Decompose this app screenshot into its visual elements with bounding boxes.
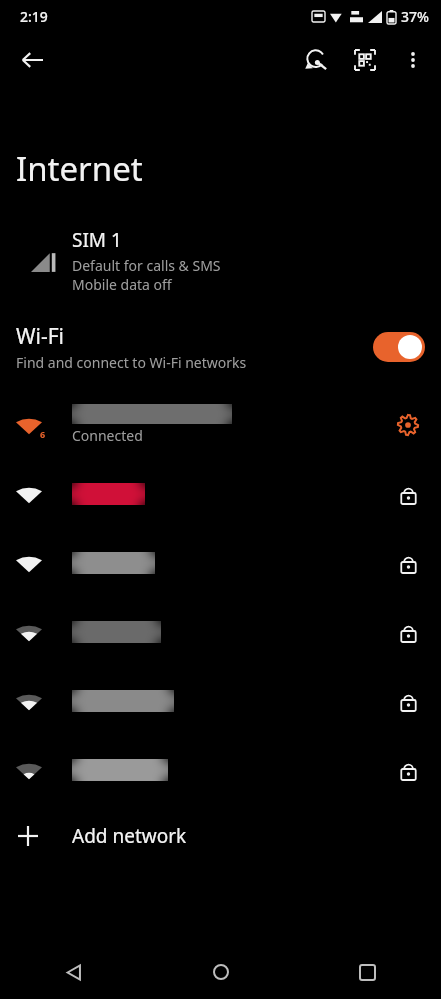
button[interactable]: Secured network bbox=[391, 753, 425, 787]
button[interactable]: Network fix bbox=[293, 36, 341, 84]
button[interactable]: Secured network bbox=[0, 666, 441, 735]
staticText: Find and connect to Wi-Fi networks bbox=[16, 353, 247, 372]
button[interactable]: 6 bbox=[0, 390, 441, 459]
staticText: Wi-Fi bbox=[16, 322, 65, 351]
button[interactable]: Home bbox=[147, 945, 294, 999]
staticText: 2:19 bbox=[20, 7, 48, 26]
button[interactable]: Recent apps bbox=[294, 945, 441, 999]
button[interactable]: More options bbox=[389, 36, 437, 84]
button[interactable]: Secured network bbox=[391, 615, 425, 649]
button[interactable]: Secured network bbox=[0, 597, 441, 666]
staticText: SIM 1 bbox=[72, 227, 122, 253]
staticText: Default for calls & SMS bbox=[72, 256, 221, 275]
button[interactable]: Secured network bbox=[391, 684, 425, 718]
staticText: 37% bbox=[401, 7, 429, 26]
staticText: Add network bbox=[72, 823, 187, 849]
button[interactable]: SIM 1 bbox=[0, 221, 441, 300]
button[interactable]: Secured network bbox=[0, 459, 441, 528]
staticText: Internet bbox=[16, 146, 143, 191]
button[interactable]: Network settings bbox=[391, 408, 425, 442]
button[interactable]: Add network bbox=[0, 804, 441, 868]
button[interactable]: Secured network bbox=[391, 546, 425, 580]
button[interactable]: Secured network bbox=[0, 528, 441, 597]
button[interactable]: Scan QR code bbox=[341, 36, 389, 84]
button[interactable]: Secured network bbox=[0, 735, 441, 804]
button[interactable]: Secured network bbox=[391, 477, 425, 511]
button[interactable]: Back bbox=[0, 945, 147, 999]
button[interactable]: Back bbox=[8, 36, 56, 84]
staticText: 6 bbox=[40, 428, 46, 440]
button[interactable]: Wi-Fi bbox=[0, 318, 441, 376]
staticText: Mobile data off bbox=[72, 275, 172, 294]
staticText: Connected bbox=[72, 426, 143, 445]
